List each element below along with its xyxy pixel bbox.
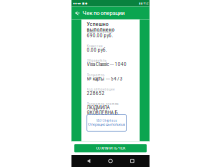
staticText: СОХРАНИТЬ ЧЕК	[96, 146, 125, 150]
staticText: Visa Classic ···· 1040	[87, 62, 127, 67]
staticText: Сумма операции	[87, 30, 113, 34]
staticText: Комиссия	[87, 44, 103, 48]
staticText: Код авторизации	[87, 88, 115, 91]
staticText: Получатель	[87, 73, 105, 77]
staticText: Получатель платежа	[87, 102, 119, 106]
staticText: 690.00 руб.	[87, 33, 113, 38]
staticText: ▪▪◂▴▪ ▮▮ ●	[73, 2, 87, 5]
staticText: № карты ···· 5473	[87, 76, 123, 82]
staticText: ▮ ▮ 10:22	[139, 2, 148, 5]
button[interactable]: Recent apps	[128, 155, 137, 167]
button[interactable]: Home	[106, 155, 115, 167]
staticText: Чек по операции	[82, 10, 124, 16]
staticText: ПАО Сбербанк	[96, 119, 118, 122]
button[interactable]: Back	[71, 6, 82, 19]
staticText: 0.00 руб.	[87, 47, 107, 53]
staticText: Успешно выполнено	[87, 21, 115, 33]
button[interactable]: СОХРАНИТЬ ЧЕК	[74, 144, 147, 152]
staticText: Отправитель	[87, 59, 107, 62]
button[interactable]: Back	[84, 155, 93, 167]
staticText: 228652	[87, 91, 105, 96]
staticText: ЛЮДМИЛА ЯКОВЛЕВНА Б.	[87, 105, 119, 116]
staticText: Операция выполнена	[88, 122, 125, 127]
